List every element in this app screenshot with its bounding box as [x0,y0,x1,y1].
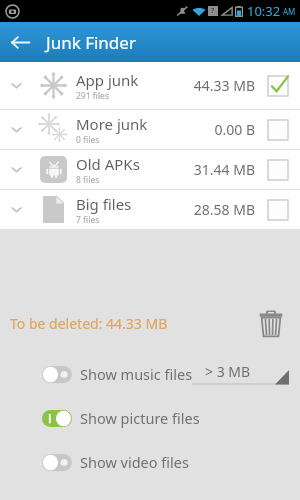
staticText: 28.58 MB [181,200,255,219]
staticText: 0 files [76,134,100,146]
staticText: 31.44 MB [181,160,255,179]
button[interactable]: Big files [0,190,300,229]
staticText: Show music files [80,364,193,384]
staticText: 8 files [76,174,100,186]
staticText: > 3 MB [205,362,251,381]
staticText: 291 files [76,90,109,102]
button[interactable]: App junk [0,62,300,109]
staticText: Junk Finder [46,31,136,54]
button[interactable]: Select Big files [255,200,300,220]
staticText: Big files [76,194,132,214]
button[interactable]: Show video files [0,449,300,475]
staticText: 44.33 MB [181,76,255,95]
staticText: ? [211,6,215,16]
button[interactable]: Old APKs [0,150,300,189]
button[interactable]: Show music files [0,361,300,387]
staticText: Show picture files [80,408,200,428]
staticText: More junk [76,114,148,134]
staticText: Old APKs [76,154,140,174]
staticText: 0.00 B [181,120,255,139]
staticText: Show video files [80,452,189,472]
button[interactable]: Select App junk [255,76,300,96]
staticText: 10:32 [247,2,281,20]
button[interactable]: Select Old APKs [255,160,300,180]
button[interactable]: Back [0,22,40,62]
staticText: AM [283,6,296,17]
staticText: To be deleted: 44.33 MB [10,314,168,333]
button[interactable]: Delete [253,305,289,341]
button[interactable]: Show picture files [0,405,300,431]
staticText: App junk [76,70,139,90]
button[interactable]: More junk [0,110,300,149]
button[interactable]: > 3 MB [192,362,289,397]
button[interactable]: Select More junk [255,120,300,140]
staticText: 7 files [76,214,100,226]
